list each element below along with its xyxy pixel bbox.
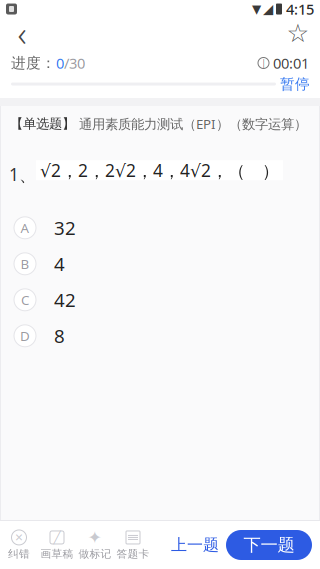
button[interactable]: 答题卡	[114, 525, 152, 565]
button[interactable]: B	[0, 246, 320, 282]
staticText: 答题卡	[116, 547, 149, 560]
button[interactable]: ✕	[0, 525, 38, 565]
staticText: ╱	[53, 531, 60, 544]
button[interactable]: ✦	[76, 525, 114, 565]
staticText: ‹	[17, 10, 26, 56]
staticText: |	[261, 58, 265, 68]
staticText: D	[20, 327, 30, 345]
staticText: 纠错	[8, 547, 30, 560]
staticText: ◢	[263, 1, 273, 16]
staticText: 下一题	[243, 534, 294, 556]
staticText: 4	[54, 251, 65, 276]
staticText: 0	[56, 53, 64, 73]
staticText: B	[20, 255, 29, 273]
staticText: 00:01	[273, 53, 309, 73]
staticText: ✦	[87, 528, 102, 547]
staticText: 8	[54, 323, 65, 348]
staticText: 通用素质能力测试（EPI）（数字运算）	[75, 115, 307, 133]
staticText: A	[20, 219, 29, 237]
button[interactable]: C	[0, 282, 320, 318]
button[interactable]: 上一题	[170, 530, 220, 560]
staticText: ☆	[286, 19, 309, 47]
staticText: √2，2，2√2，4，4√2，（ ）	[40, 159, 279, 182]
staticText: 【单选题】	[10, 116, 75, 132]
staticText: /30	[64, 53, 85, 73]
staticText: 画草稿	[40, 547, 73, 560]
staticText: 1、	[9, 163, 36, 186]
button[interactable]: ╱	[38, 525, 76, 565]
button[interactable]: Favorite	[276, 18, 320, 48]
button[interactable]: A	[0, 210, 320, 246]
staticText: 进度：	[11, 54, 56, 72]
button[interactable]: 下一题	[226, 530, 312, 560]
staticText: 上一题	[171, 535, 219, 555]
button[interactable]: 暂停	[276, 75, 320, 93]
button[interactable]: Back	[0, 18, 44, 48]
staticText: ▼	[252, 2, 261, 16]
staticText: C	[21, 291, 29, 309]
staticText: 4:15	[286, 0, 314, 19]
staticText: 做标记	[78, 547, 111, 560]
button[interactable]: D	[0, 318, 320, 354]
staticText: 暂停	[280, 75, 310, 93]
staticText: 32	[54, 215, 76, 240]
staticText: ✕	[14, 531, 23, 543]
staticText: 42	[54, 287, 76, 312]
